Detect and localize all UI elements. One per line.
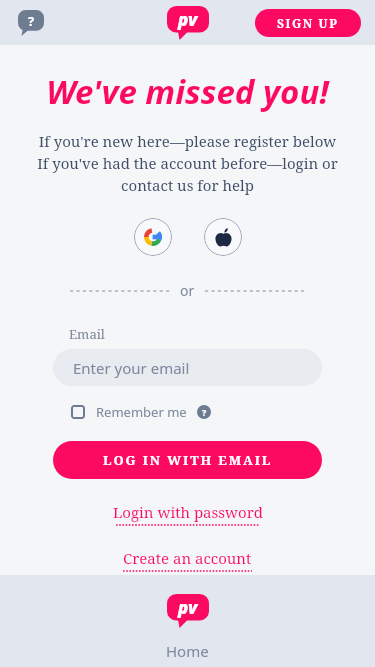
staticText: Enter your email: [73, 358, 190, 378]
staticText: If you're new here—please register below…: [12, 131, 363, 196]
button[interactable]: Remember me: [71, 403, 187, 421]
staticText: or: [180, 281, 195, 300]
button[interactable]: Sign in with Google: [134, 218, 172, 256]
button[interactable]: Create an account: [119, 548, 256, 572]
button[interactable]: Sign in with Apple: [204, 218, 242, 256]
button[interactable]: Enter your email: [53, 349, 322, 386]
button[interactable]: LOG IN WITH EMAIL: [53, 441, 322, 479]
button[interactable]: Help: [14, 6, 48, 40]
staticText: pv: [178, 596, 198, 619]
staticText: Email: [69, 325, 105, 343]
button[interactable]: Home: [166, 641, 209, 661]
staticText: Login with password: [113, 502, 263, 522]
button[interactable]: PV logo: [167, 6, 209, 40]
staticText: Remember me: [96, 403, 187, 421]
staticText: ?: [202, 406, 207, 418]
button[interactable]: SIGN UP: [255, 9, 361, 37]
staticText: Home: [166, 641, 209, 661]
staticText: pv: [178, 8, 198, 31]
staticText: ?: [28, 12, 35, 30]
staticText: LOG IN WITH EMAIL: [103, 451, 273, 469]
staticText: We've missed you!: [0, 69, 375, 114]
button[interactable]: What is remember me: [196, 404, 212, 420]
button[interactable]: Login with password: [109, 502, 267, 526]
button[interactable]: PV logo: [167, 594, 209, 628]
staticText: Create an account: [123, 548, 252, 568]
staticText: SIGN UP: [277, 15, 339, 31]
